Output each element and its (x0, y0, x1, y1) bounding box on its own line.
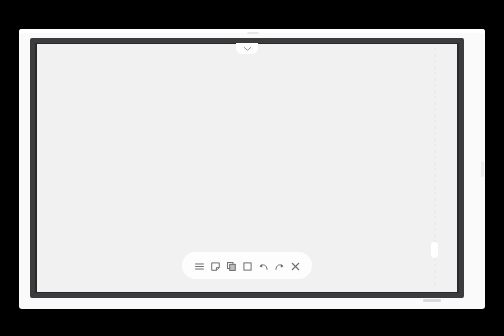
button[interactable]: Scroll (431, 242, 438, 258)
button[interactable]: Redo (271, 255, 287, 277)
button[interactable]: Undo (255, 255, 271, 277)
button[interactable]: Open menu drawer (236, 43, 258, 54)
button[interactable]: New note (207, 255, 223, 277)
button[interactable]: Menu (191, 255, 207, 277)
button[interactable]: Shape (239, 255, 255, 277)
button[interactable]: Copy (223, 255, 239, 277)
button[interactable]: Close (287, 255, 303, 277)
